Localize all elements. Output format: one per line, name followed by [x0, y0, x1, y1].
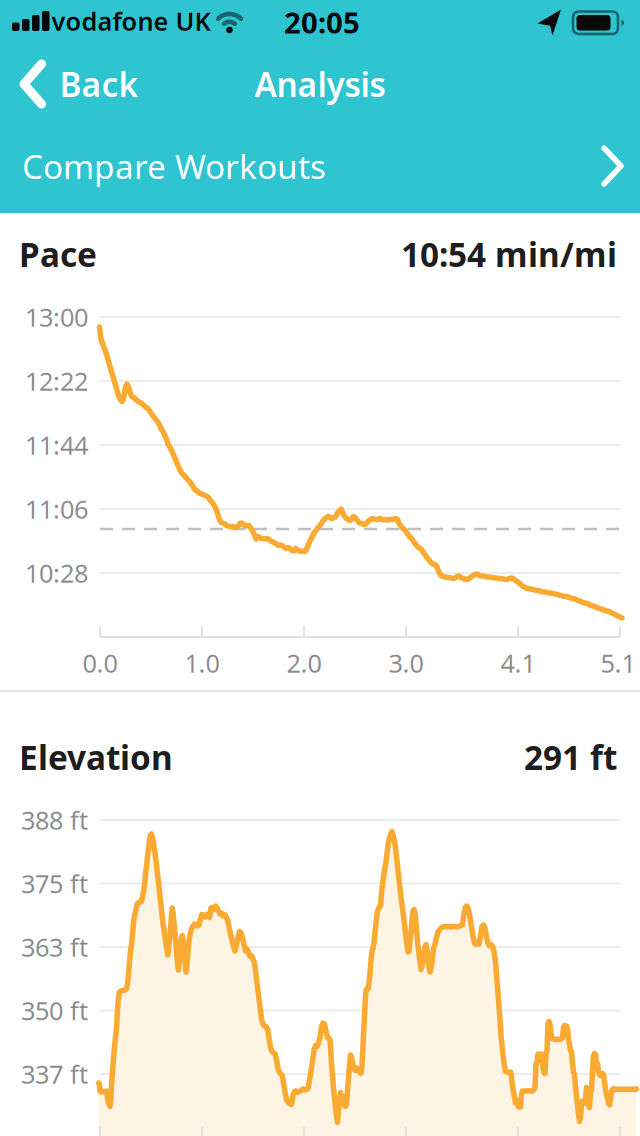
- staticText: 20:05: [284, 2, 360, 41]
- staticText: 2.0: [286, 646, 321, 680]
- staticText: 11:06: [25, 492, 88, 526]
- staticText: 388 ft: [21, 803, 88, 837]
- staticText: 5.1: [600, 646, 635, 680]
- staticText: 0.0: [82, 646, 117, 680]
- staticText: 3.0: [388, 646, 423, 680]
- staticText: 363 ft: [21, 930, 88, 964]
- staticText: 375 ft: [21, 867, 88, 900]
- staticText: 4.1: [500, 646, 535, 680]
- staticText: 10:28: [25, 556, 88, 590]
- button[interactable]: Compare Workouts: [0, 122, 640, 210]
- staticText: 291 ft: [524, 735, 617, 779]
- staticText: 11:44: [25, 428, 88, 462]
- staticText: 337 ft: [21, 1057, 88, 1091]
- staticText: Elevation: [19, 735, 173, 779]
- staticText: Analysis: [254, 62, 385, 106]
- staticText: Back: [59, 62, 138, 106]
- staticText: vodafone UK: [51, 4, 210, 38]
- staticText: 13:00: [25, 300, 88, 334]
- staticText: 350 ft: [21, 994, 88, 1027]
- button[interactable]: Back: [19, 61, 138, 107]
- staticText: Pace: [19, 232, 97, 276]
- staticText: 10:54 min/mi: [401, 232, 617, 276]
- staticText: 12:22: [25, 364, 88, 398]
- staticText: Compare Workouts: [22, 144, 326, 188]
- staticText: 1.0: [184, 646, 219, 680]
